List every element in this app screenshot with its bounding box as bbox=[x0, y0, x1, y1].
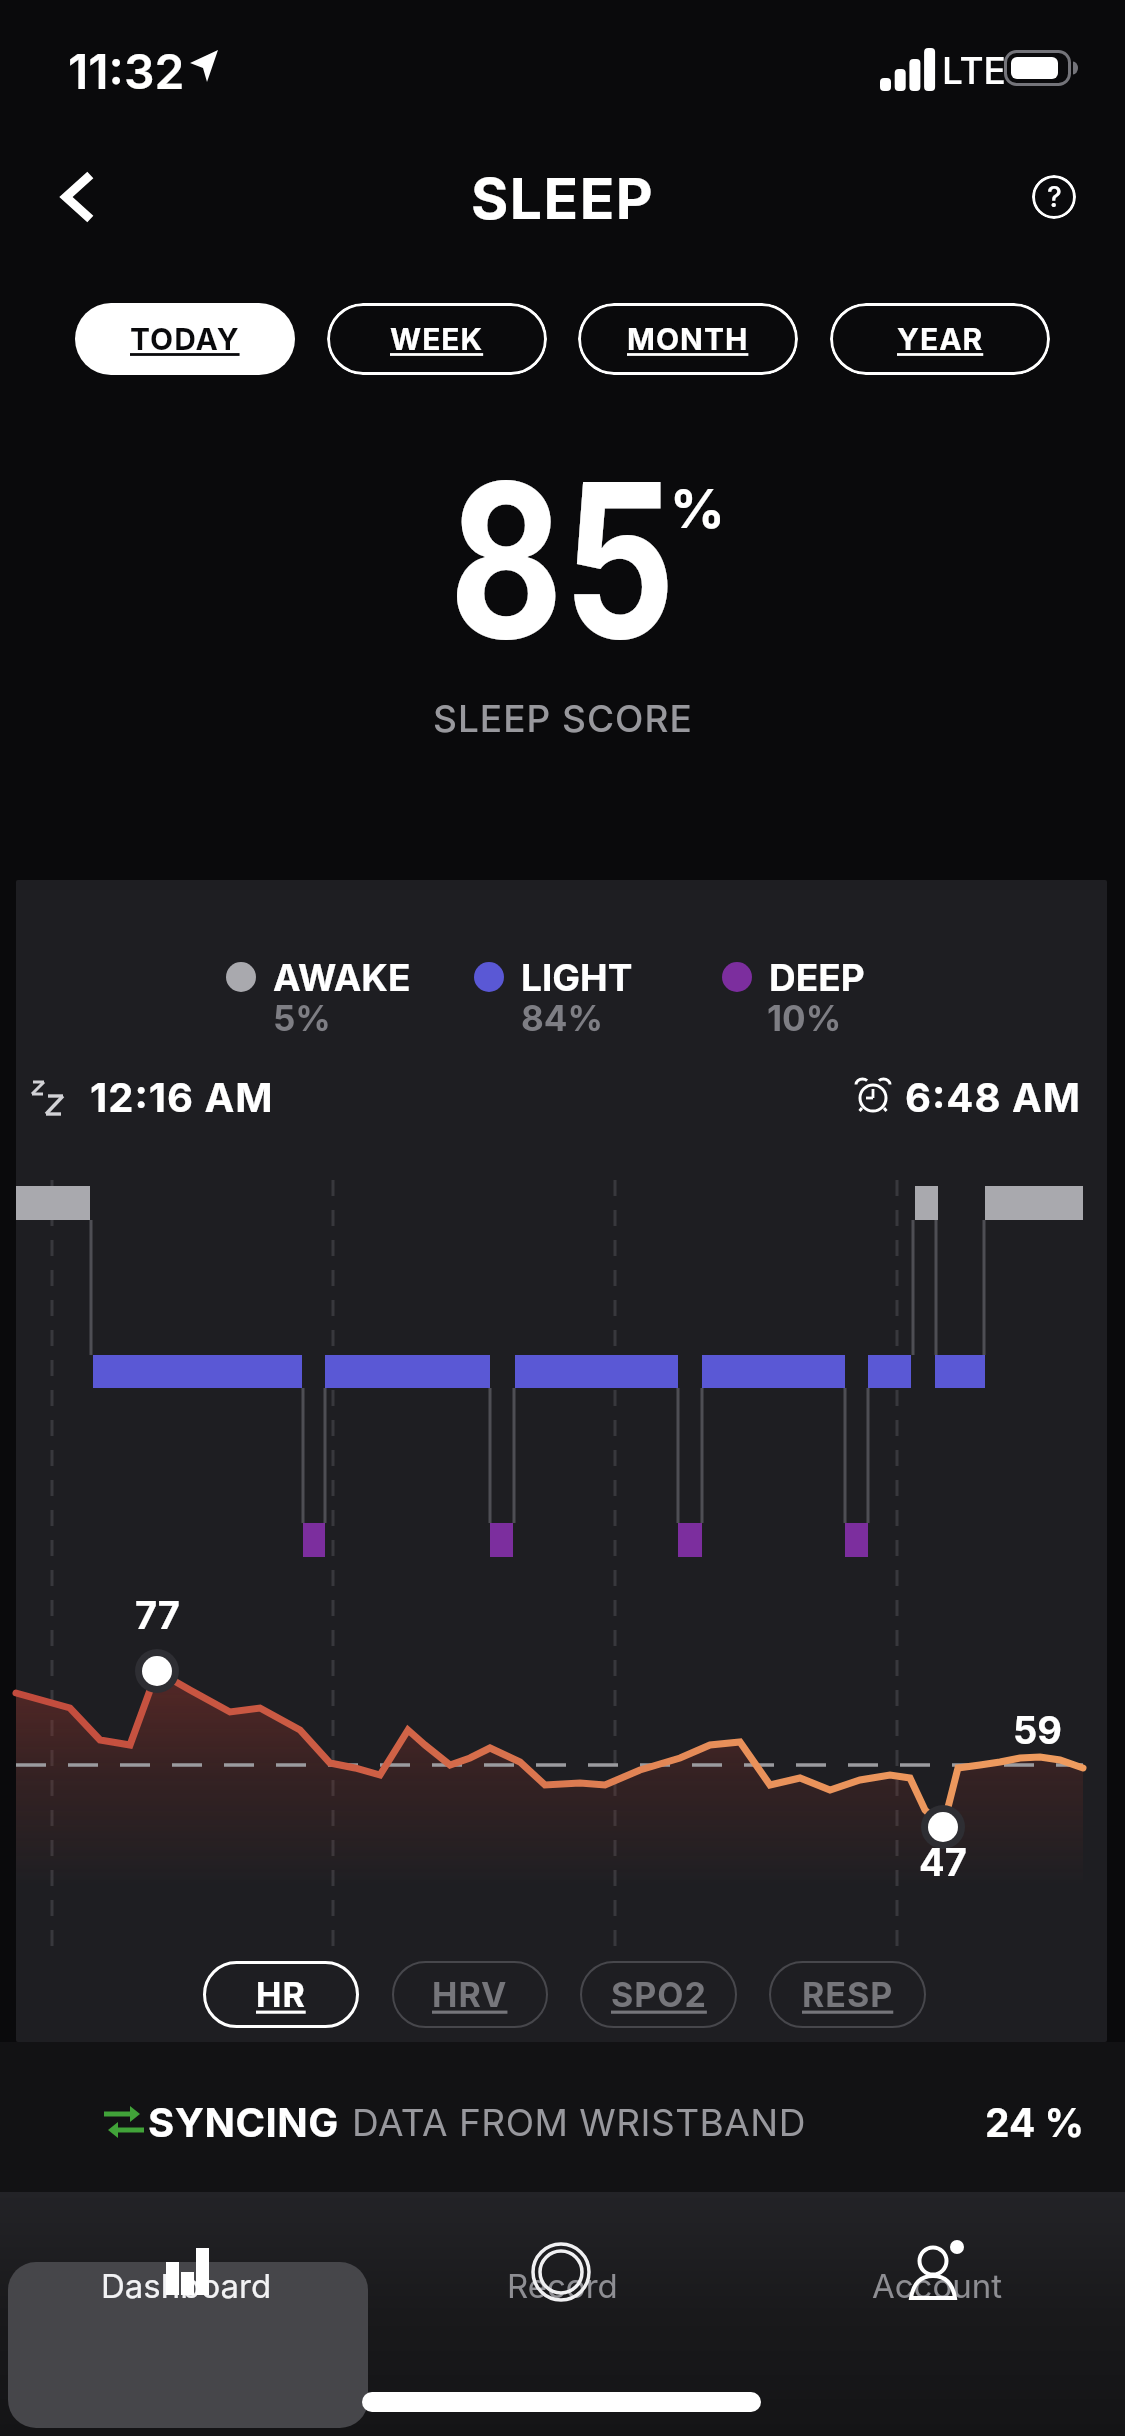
staticText: Record bbox=[507, 2266, 618, 2306]
staticText: 6:48 AM bbox=[905, 1073, 1082, 1121]
staticText: WEEK bbox=[390, 321, 484, 357]
staticText: AWAKE bbox=[273, 955, 411, 1000]
button[interactable]: HR bbox=[203, 1961, 359, 2028]
staticText: 59 bbox=[1013, 1707, 1062, 1753]
button[interactable]: RESP bbox=[769, 1961, 926, 2028]
staticText: 77 bbox=[135, 1592, 180, 1638]
button[interactable] bbox=[36, 2220, 336, 2350]
button[interactable] bbox=[412, 2220, 712, 2350]
button[interactable]: WEEK bbox=[327, 303, 547, 375]
staticText: DEEP bbox=[769, 955, 865, 1000]
staticText: Account bbox=[872, 2266, 1003, 2306]
button[interactable]: TODAY bbox=[75, 303, 295, 375]
staticText: SPO2 bbox=[611, 1974, 707, 2015]
button[interactable] bbox=[787, 2220, 1087, 2350]
staticText: RESP bbox=[802, 1974, 894, 2015]
staticText: LIGHT bbox=[521, 955, 633, 1000]
staticText: 84% bbox=[521, 997, 603, 1039]
button[interactable]: SPO2 bbox=[580, 1961, 737, 2028]
staticText: MONTH bbox=[627, 321, 749, 357]
staticText: SLEEP bbox=[471, 164, 655, 230]
staticText: 24 % bbox=[985, 2099, 1085, 2146]
staticText: 12:16 AM bbox=[90, 1073, 274, 1121]
staticText: 10% bbox=[767, 997, 842, 1039]
button[interactable] bbox=[36, 155, 116, 239]
staticText: ? bbox=[1047, 180, 1062, 214]
staticText: 11:32 bbox=[68, 42, 185, 98]
button[interactable]: YEAR bbox=[830, 303, 1050, 375]
staticText: SYNCING bbox=[148, 2098, 339, 2146]
staticText: % bbox=[670, 476, 725, 536]
staticText: SLEEP SCORE bbox=[433, 696, 693, 741]
staticText: HRV bbox=[432, 1974, 508, 2015]
button[interactable]: HRV bbox=[392, 1961, 548, 2028]
button[interactable]: MONTH bbox=[578, 303, 798, 375]
staticText: Dashboard bbox=[101, 2266, 272, 2306]
staticText: YEAR bbox=[897, 321, 984, 357]
staticText: 47 bbox=[919, 1839, 967, 1885]
staticText: 85 bbox=[449, 431, 676, 690]
button[interactable]: ? bbox=[1032, 175, 1076, 219]
staticText: 5% bbox=[273, 997, 331, 1039]
staticText: HR bbox=[256, 1974, 306, 2015]
staticText: LTE bbox=[942, 48, 1006, 93]
staticText: DATA FROM WRISTBAND bbox=[352, 2100, 806, 2145]
staticText: TODAY bbox=[130, 321, 240, 357]
